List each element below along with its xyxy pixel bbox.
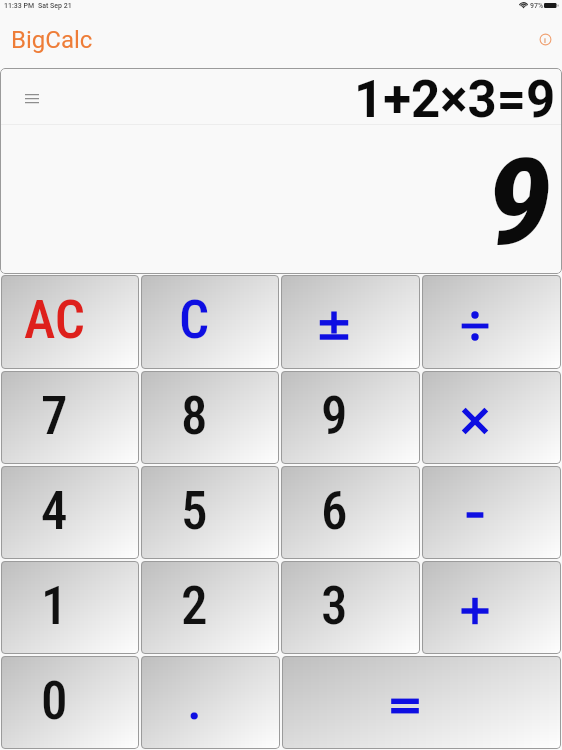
button[interactable]: 5: [141, 466, 279, 559]
button[interactable]: Plus: [422, 561, 561, 654]
staticText: i: [544, 36, 546, 45]
button[interactable]: 4: [1, 466, 139, 559]
button[interactable]: Equals: [282, 656, 561, 749]
button[interactable]: Info: [533, 27, 557, 51]
staticText: 8: [181, 385, 208, 447]
button[interactable]: 6: [281, 466, 420, 559]
staticText: 6: [321, 480, 348, 542]
button[interactable]: Divide: [422, 275, 561, 369]
staticText: C: [179, 289, 210, 351]
button[interactable]: Plus minus: [281, 275, 420, 369]
button[interactable]: 8: [141, 371, 279, 464]
staticText: 1: [41, 575, 68, 637]
staticText: 3: [321, 575, 348, 637]
staticText: 9: [321, 385, 348, 447]
staticText: AC: [24, 289, 85, 351]
staticText: 97%: [530, 2, 544, 10]
button[interactable]: C: [141, 275, 279, 369]
staticText: 9: [485, 132, 553, 274]
staticText: BigCalc: [11, 26, 93, 54]
button[interactable]: Multiply: [422, 371, 561, 464]
staticText: 7: [41, 385, 68, 447]
staticText: 2: [181, 575, 208, 637]
button[interactable]: 1: [1, 561, 139, 654]
button[interactable]: AC: [1, 275, 139, 369]
staticText: .: [187, 670, 202, 732]
button[interactable]: 2: [141, 561, 279, 654]
staticText: 5: [181, 480, 208, 542]
button[interactable]: .: [141, 656, 280, 749]
staticText: 11:33 PM: [4, 2, 35, 10]
staticText: 1+2×3=9: [354, 70, 556, 130]
staticText: Sat Sep 21: [38, 2, 72, 10]
button[interactable]: Menu: [19, 88, 45, 108]
button[interactable]: Minus: [422, 466, 561, 559]
button[interactable]: 7: [1, 371, 139, 464]
staticText: 4: [41, 480, 68, 542]
button[interactable]: 9: [281, 371, 420, 464]
button[interactable]: 3: [281, 561, 420, 654]
button[interactable]: 0: [1, 656, 139, 749]
staticText: 0: [41, 670, 68, 732]
